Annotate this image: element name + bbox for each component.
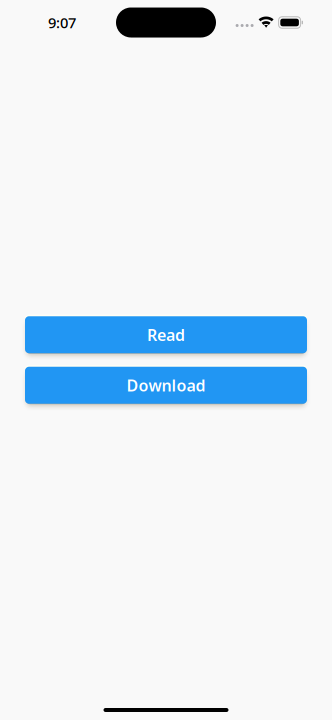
staticText: 9:07 [48,13,76,32]
staticText: Download [126,375,205,396]
button[interactable]: Read [25,316,307,353]
staticText: Read [147,324,185,345]
button[interactable]: Download [25,367,307,404]
